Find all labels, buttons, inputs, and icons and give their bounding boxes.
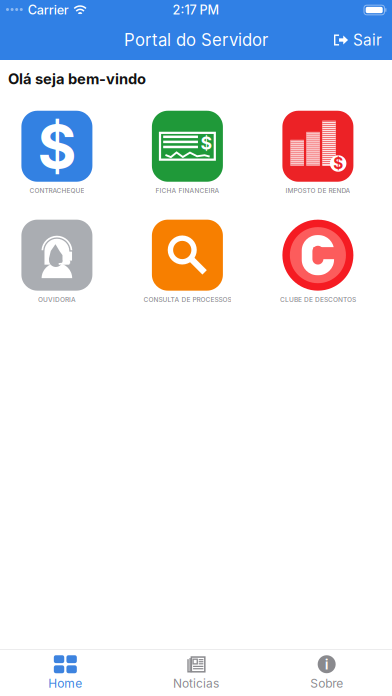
staticText: Home xyxy=(48,676,82,691)
staticText: Portal do Servidor xyxy=(124,30,268,50)
button[interactable]: Noticias xyxy=(131,649,261,696)
staticText: Sair xyxy=(353,31,382,49)
button[interactable]: CONSULTA DE PROCESSOS xyxy=(152,220,223,304)
button[interactable]: Home xyxy=(0,649,131,696)
staticText: i xyxy=(325,655,329,673)
staticText: FICHA FINANCEIRA xyxy=(155,187,219,195)
staticText: Carrier xyxy=(28,2,69,18)
button[interactable]: Sair xyxy=(326,23,390,57)
staticText: $ xyxy=(200,132,212,154)
staticText: Sobre xyxy=(310,676,343,691)
staticText: CONSULTA DE PROCESSOS xyxy=(143,296,231,304)
button[interactable]: $ xyxy=(21,111,92,195)
button[interactable]: OUVIDORIA xyxy=(21,220,92,304)
staticText: Noticias xyxy=(173,676,219,691)
button[interactable]: CLUBE DE DESCONTOS xyxy=(282,220,353,304)
staticText: $ xyxy=(37,110,76,182)
staticText: $ xyxy=(333,154,343,173)
staticText: Olá seja bem-vindo xyxy=(8,70,146,88)
button[interactable]: $ xyxy=(152,111,223,195)
staticText: CONTRACHEQUE xyxy=(29,187,84,195)
staticText: 2:17 PM xyxy=(172,2,219,18)
staticText: IMPOSTO DE RENDA xyxy=(285,187,350,195)
staticText: CLUBE DE DESCONTOS xyxy=(280,296,356,304)
button[interactable]: $ xyxy=(282,111,353,195)
button[interactable]: i xyxy=(261,649,392,696)
staticText: OUVIDORIA xyxy=(38,296,76,304)
